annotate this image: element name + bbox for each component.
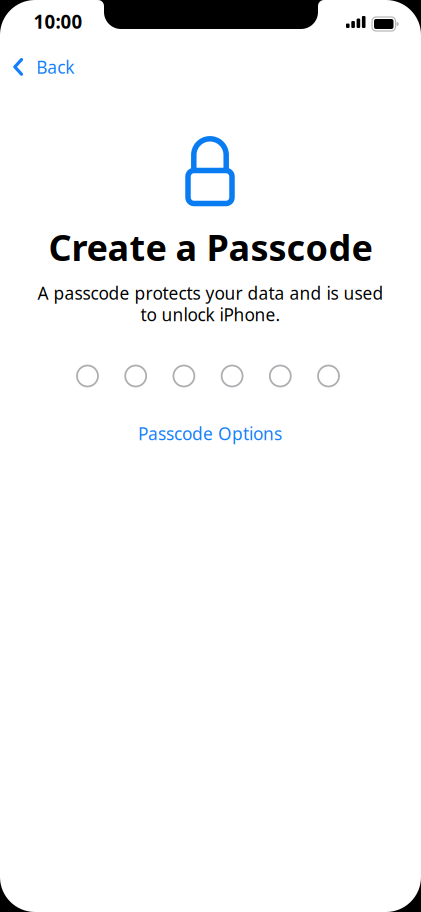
staticText: A passcode protects your data and is use… — [37, 281, 383, 304]
button[interactable]: Back — [13, 55, 74, 78]
button[interactable]: Passcode Options — [138, 422, 282, 445]
staticText: Back — [36, 55, 74, 78]
staticText: to unlock iPhone. — [140, 303, 280, 326]
staticText: 10:00 — [33, 9, 82, 34]
staticText: Create a Passcode — [48, 223, 372, 271]
staticText: Passcode Options — [138, 422, 282, 445]
